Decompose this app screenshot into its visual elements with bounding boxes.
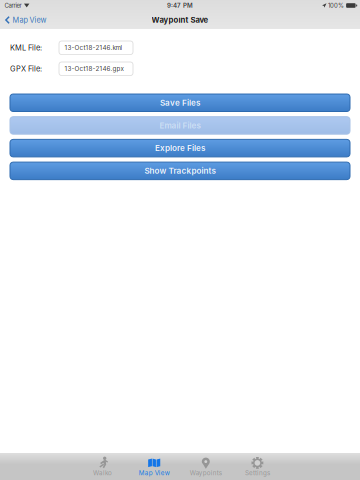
button[interactable]: Waypoints — [180, 454, 232, 478]
button[interactable]: Walko — [77, 454, 128, 478]
staticText: 9:47 PM — [167, 2, 193, 9]
button[interactable]: Show Trackpoints — [10, 162, 350, 180]
staticText: 100% — [328, 2, 344, 9]
staticText: Email Files — [159, 120, 200, 130]
staticText: 13-Oct18-2146.kml — [64, 44, 122, 52]
staticText: Show Trackpoints — [144, 166, 215, 176]
staticText: KML File: — [10, 43, 42, 52]
button[interactable]: Save Files — [10, 94, 350, 111]
staticText: Settings — [245, 469, 270, 477]
button[interactable]: Explore Files — [10, 139, 350, 157]
staticText: Map View — [139, 469, 170, 477]
staticText: Map View — [12, 16, 46, 24]
staticText: Explore Files — [155, 143, 205, 153]
staticText: 13-Oct18-2146.gpx — [64, 65, 123, 73]
staticText: GPX File: — [10, 64, 42, 73]
staticText: Save Files — [160, 98, 200, 108]
staticText: Waypoints — [190, 469, 222, 477]
staticText: Carrier — [4, 2, 21, 9]
staticText: Waypoint Save — [151, 15, 208, 25]
button[interactable]: Email Files — [10, 117, 350, 134]
button[interactable]: Map View — [0, 11, 46, 29]
button[interactable]: Settings — [232, 454, 283, 478]
button[interactable]: Map View — [128, 454, 180, 478]
staticText: Walko — [93, 469, 112, 477]
